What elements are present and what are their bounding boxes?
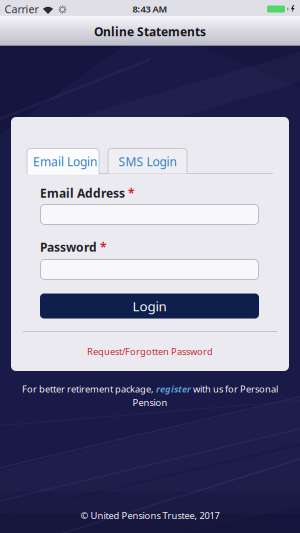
staticText: Request/Forgotten Password	[87, 345, 213, 358]
button[interactable]: SMS Login	[107, 148, 187, 174]
staticText: Password	[40, 239, 97, 255]
staticText: Carrier	[4, 2, 38, 16]
button[interactable]: Login	[40, 293, 259, 318]
staticText: with us for Personal	[191, 383, 278, 395]
staticText: Online Statements	[94, 23, 206, 39]
staticText: For better retirement package,	[22, 383, 156, 395]
button[interactable]: Request/Forgotten Password	[87, 345, 213, 358]
staticText: Email Login	[33, 153, 97, 169]
staticText: *	[128, 185, 135, 201]
staticText: SMS Login	[118, 153, 176, 169]
button[interactable]: register	[156, 383, 191, 395]
staticText: Pension	[132, 396, 167, 409]
staticText: register	[156, 383, 191, 395]
staticText: Login	[132, 297, 166, 315]
staticText: Email Address	[40, 185, 125, 201]
staticText: © United Pensions Trustee, 2017	[80, 509, 219, 522]
staticText: 8:43 AM	[132, 3, 167, 15]
button[interactable]: Email Login	[26, 148, 99, 175]
staticText: *	[100, 239, 107, 255]
